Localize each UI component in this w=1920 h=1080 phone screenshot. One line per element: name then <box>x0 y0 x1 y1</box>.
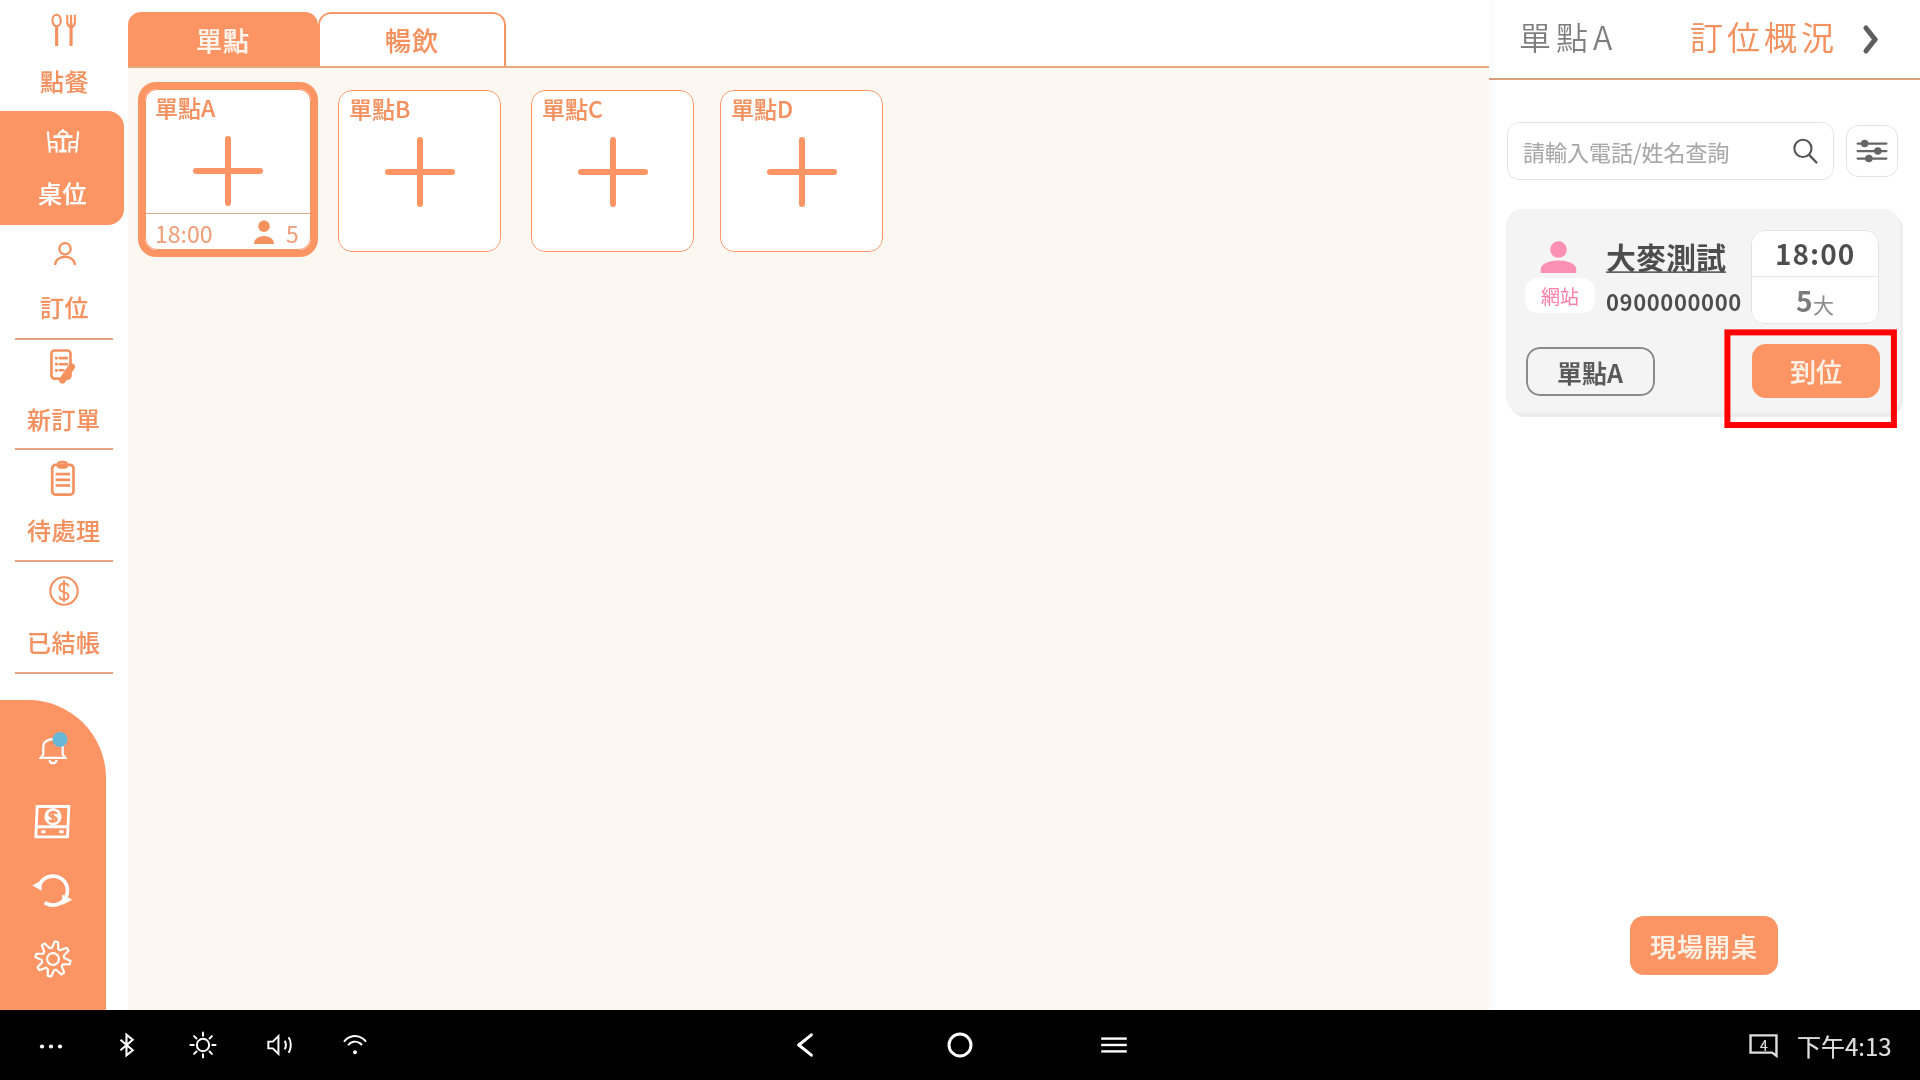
staticText: 大 <box>1813 289 1834 319</box>
button[interactable]: 暢飲 <box>318 12 506 68</box>
button[interactable]: 請輸入電話/姓名查詢 <box>1523 122 1818 180</box>
button[interactable]: 單點A <box>145 89 311 250</box>
button[interactable]: 新訂單 <box>0 340 128 448</box>
button[interactable]: Bluetooth <box>110 1028 144 1062</box>
button[interactable]: 單點C <box>531 90 694 252</box>
button[interactable]: Home <box>938 1023 982 1067</box>
button[interactable]: Back <box>784 1023 828 1067</box>
button[interactable]: Refresh <box>30 868 76 914</box>
staticText: 單點A <box>1557 354 1624 390</box>
button[interactable]: 現場開桌 <box>1630 916 1778 975</box>
staticText: 現場開桌 <box>1650 927 1759 965</box>
staticText: 請輸入電話/姓名查詢 <box>1523 135 1730 167</box>
button[interactable]: 單點B <box>338 90 501 252</box>
staticText: 18:00 <box>155 216 213 249</box>
button[interactable]: 訂位 <box>0 225 128 338</box>
staticText: 5 <box>1796 280 1813 321</box>
staticText: 訂位概況 <box>1688 12 1836 60</box>
button[interactable]: 點餐 <box>0 0 128 111</box>
button[interactable]: 訂位概況 <box>1688 12 1836 60</box>
button[interactable]: Recents <box>1092 1023 1136 1067</box>
staticText: 訂位 <box>40 289 89 324</box>
staticText: 桌位 <box>38 175 87 210</box>
button[interactable]: 單點D <box>720 90 883 252</box>
button[interactable]: Filter <box>1846 125 1898 177</box>
button[interactable]: Volume <box>262 1028 296 1062</box>
staticText: 單點B <box>349 91 411 124</box>
button[interactable]: 待處理 <box>0 450 128 560</box>
staticText: 0900000000 <box>1606 285 1742 317</box>
staticText: 已結帳 <box>27 624 101 659</box>
button[interactable]: More reservations <box>1855 19 1885 59</box>
staticText: 新訂單 <box>27 401 101 436</box>
button[interactable]: 桌位 <box>0 111 124 225</box>
button[interactable]: Cash drawer <box>30 798 76 844</box>
button[interactable]: Notifications <box>30 727 76 773</box>
button[interactable]: 已結帳 <box>0 562 128 672</box>
button[interactable]: Settings <box>30 936 76 982</box>
staticText: 4 <box>1760 1035 1768 1055</box>
staticText: 單點C <box>542 91 603 124</box>
staticText: 下午4:13 <box>1797 1028 1892 1063</box>
button[interactable]: 大麥測試 <box>1606 234 1726 277</box>
button[interactable]: More <box>34 1028 68 1062</box>
staticText: 到位 <box>1790 352 1843 390</box>
staticText: 單點 <box>196 21 251 59</box>
staticText: 5 <box>286 216 299 249</box>
button[interactable]: 單點A <box>1526 347 1655 396</box>
staticText: 單點A <box>155 90 216 123</box>
button[interactable]: Wi-Fi <box>338 1028 372 1062</box>
button[interactable]: Brightness <box>186 1028 220 1062</box>
staticText: 暢飲 <box>385 21 440 59</box>
button[interactable]: 單點 <box>128 12 318 68</box>
button[interactable]: Notifications: 4 <box>1750 1035 1777 1056</box>
button[interactable]: 到位 <box>1752 344 1880 398</box>
button[interactable]: 單點A <box>1519 13 1618 59</box>
staticText: 網站 <box>1541 282 1580 310</box>
staticText: 待處理 <box>27 512 101 547</box>
staticText: 18:00 <box>1775 233 1856 274</box>
staticText: 單點D <box>731 91 794 124</box>
staticText: 點餐 <box>40 63 89 98</box>
